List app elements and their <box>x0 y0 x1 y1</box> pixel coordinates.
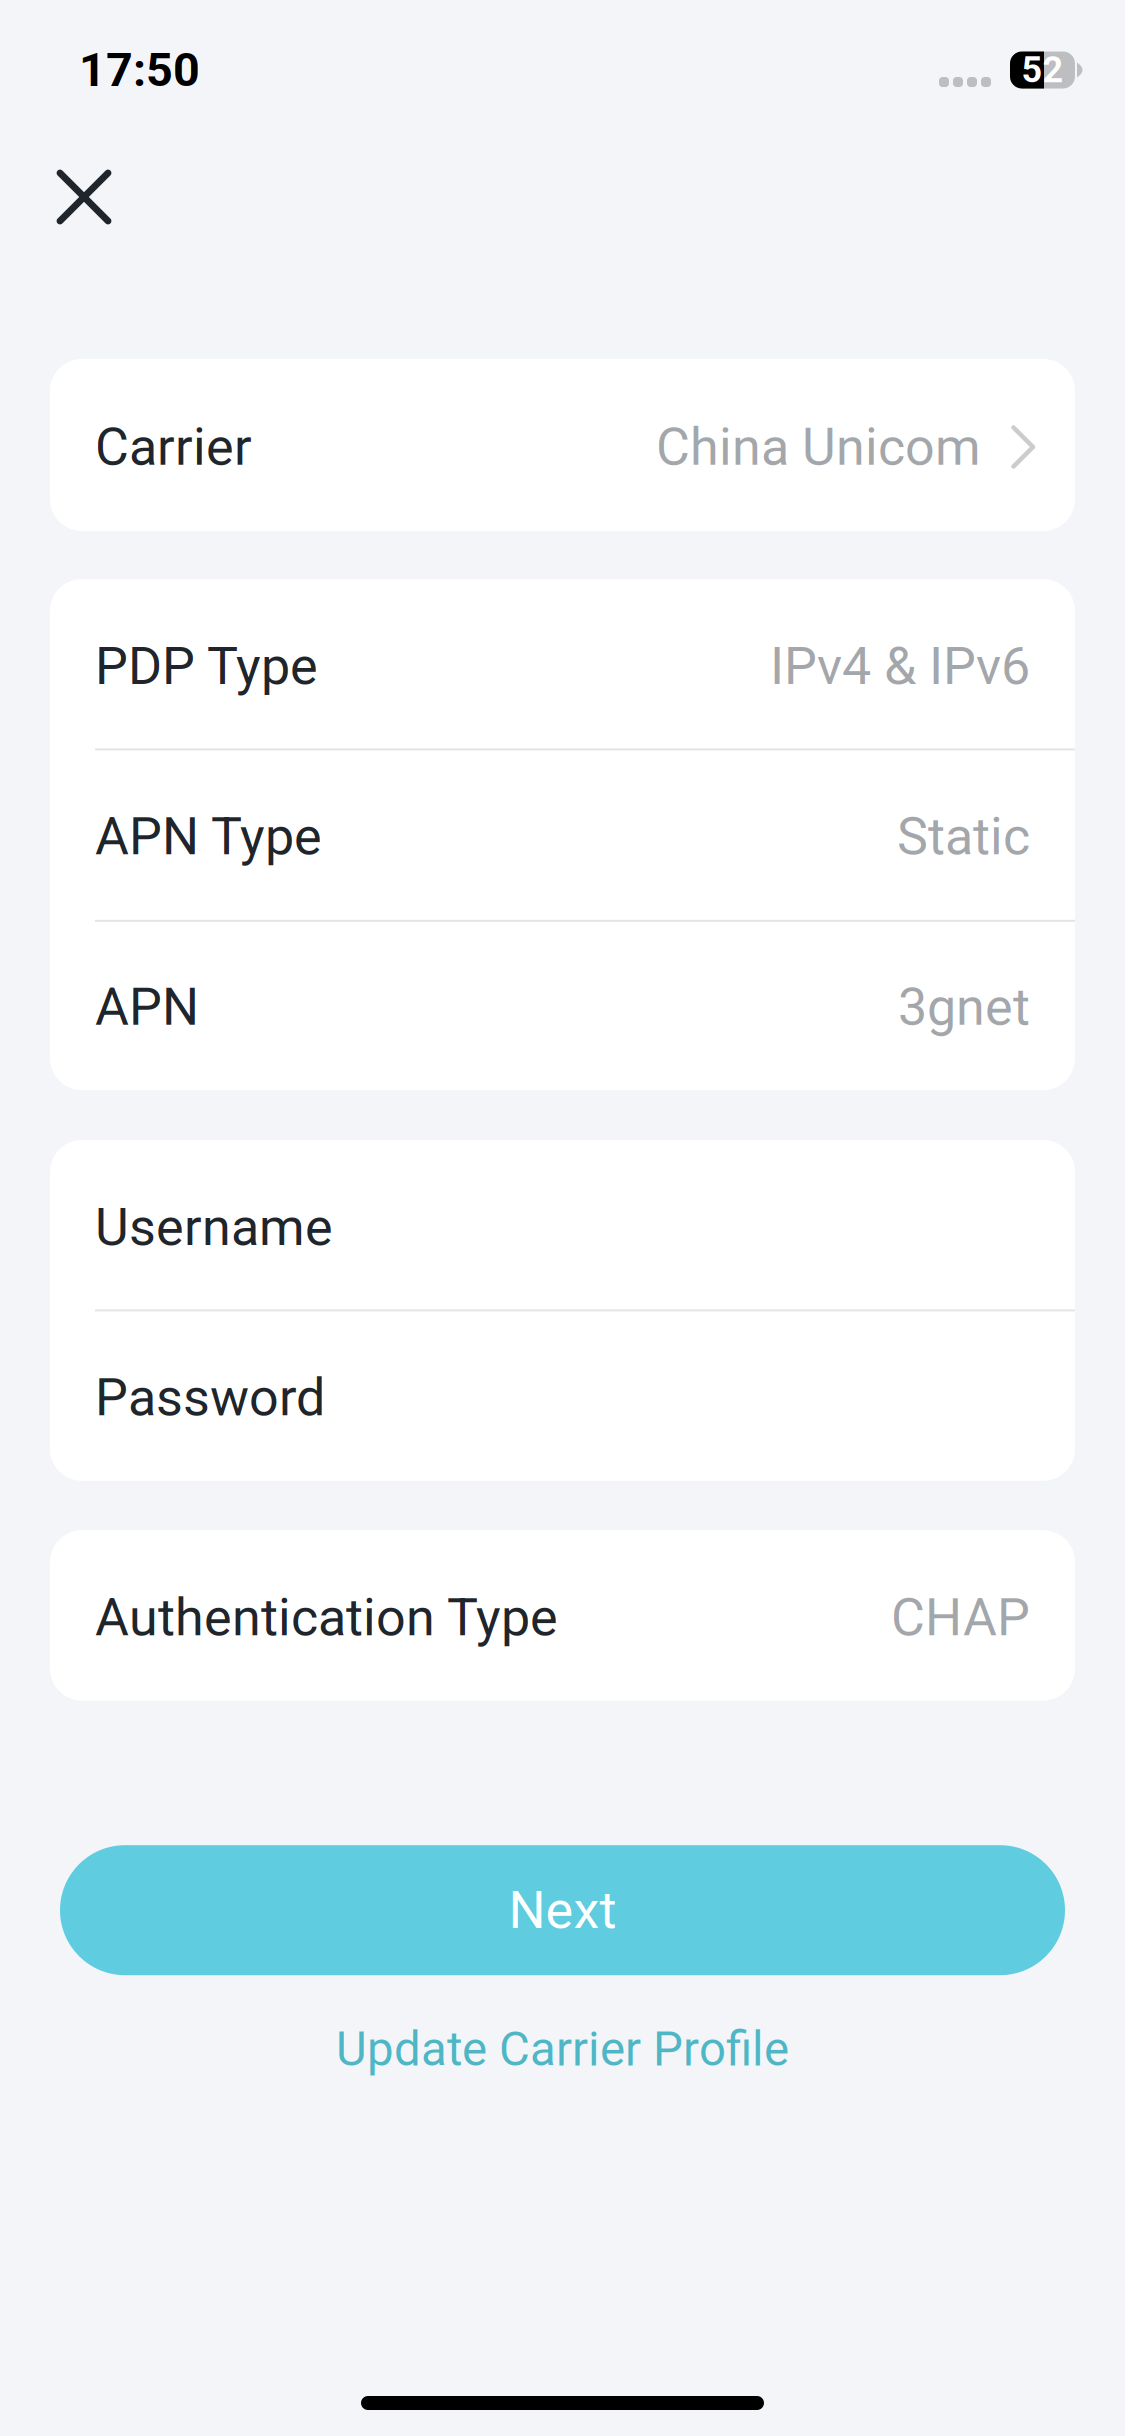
button[interactable]: Password <box>50 1310 1075 1481</box>
staticText: China Unicom <box>656 416 981 477</box>
button[interactable]: Update Carrier Profile <box>60 2007 1065 2091</box>
staticText: Next <box>508 1880 616 1941</box>
staticText: Static <box>897 806 1030 867</box>
button[interactable]: Username <box>50 1140 1075 1310</box>
staticText: PDP Type <box>95 636 318 697</box>
staticText: Authentication Type <box>95 1587 558 1648</box>
staticText: CHAP <box>891 1587 1030 1648</box>
button[interactable]: Next <box>60 1845 1065 1975</box>
staticText: 17:50 <box>79 43 200 97</box>
button[interactable]: Authentication Type <box>50 1530 1075 1701</box>
staticText: 52 <box>1021 49 1063 91</box>
button[interactable]: Close <box>32 145 136 249</box>
staticText: Password <box>95 1367 325 1428</box>
button[interactable]: PDP Type <box>50 579 1075 749</box>
staticText: Carrier <box>95 416 252 477</box>
staticText: APN Type <box>95 806 322 867</box>
staticText: APN <box>95 976 199 1037</box>
staticText: Update Carrier Profile <box>336 2021 789 2077</box>
staticText: Username <box>95 1197 333 1258</box>
button[interactable]: APN <box>50 920 1075 1090</box>
button[interactable]: APN Type <box>50 749 1075 920</box>
staticText: 3gnet <box>898 976 1030 1037</box>
button[interactable]: Carrier <box>50 360 1075 530</box>
staticText: IPv4 & IPv6 <box>770 636 1030 697</box>
